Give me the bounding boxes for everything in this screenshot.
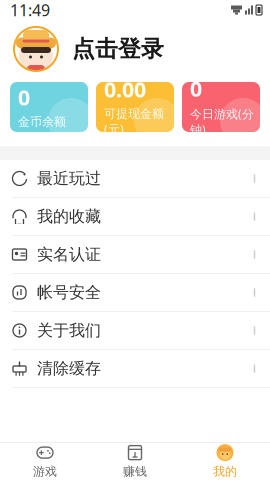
button[interactable]: 帐号安全 bbox=[0, 274, 270, 311]
staticText: 11:49 bbox=[10, 0, 50, 21]
staticText: 关于我们 bbox=[37, 321, 101, 340]
button[interactable]: 实名认证 bbox=[0, 236, 270, 273]
staticText: 今日游戏(分钟) bbox=[190, 106, 254, 138]
button[interactable]: 游戏 bbox=[0, 443, 90, 480]
button[interactable]: 0 bbox=[182, 82, 260, 132]
button[interactable]: 0.00 bbox=[96, 82, 174, 132]
staticText: 0.00 bbox=[104, 75, 146, 103]
staticText: 金币余额 bbox=[18, 114, 66, 129]
staticText: 我的收藏 bbox=[37, 207, 101, 226]
button[interactable]: 我的 bbox=[180, 443, 270, 480]
staticText: 帐号安全 bbox=[37, 283, 101, 302]
button[interactable]: 关于我们 bbox=[0, 312, 270, 349]
staticText: 实名认证 bbox=[37, 245, 101, 264]
button[interactable]: 我的收藏 bbox=[0, 198, 270, 235]
staticText: 最近玩过 bbox=[37, 169, 101, 188]
button[interactable]: 清除缓存 bbox=[0, 350, 270, 387]
button[interactable]: 最近玩过 bbox=[0, 160, 270, 197]
button[interactable]: 赚钱 bbox=[90, 443, 180, 480]
staticText: 0 bbox=[190, 74, 202, 103]
button[interactable]: 点击登录 bbox=[0, 20, 270, 78]
staticText: 点击登录 bbox=[72, 35, 164, 63]
staticText: 我的 bbox=[213, 464, 237, 479]
staticText: 0 bbox=[18, 83, 30, 111]
button[interactable]: 0 bbox=[10, 82, 88, 132]
staticText: 清除缓存 bbox=[37, 359, 101, 378]
staticText: 游戏 bbox=[33, 464, 57, 479]
staticText: 赚钱 bbox=[123, 464, 147, 479]
staticText: 可提现金额(元) bbox=[104, 106, 164, 137]
